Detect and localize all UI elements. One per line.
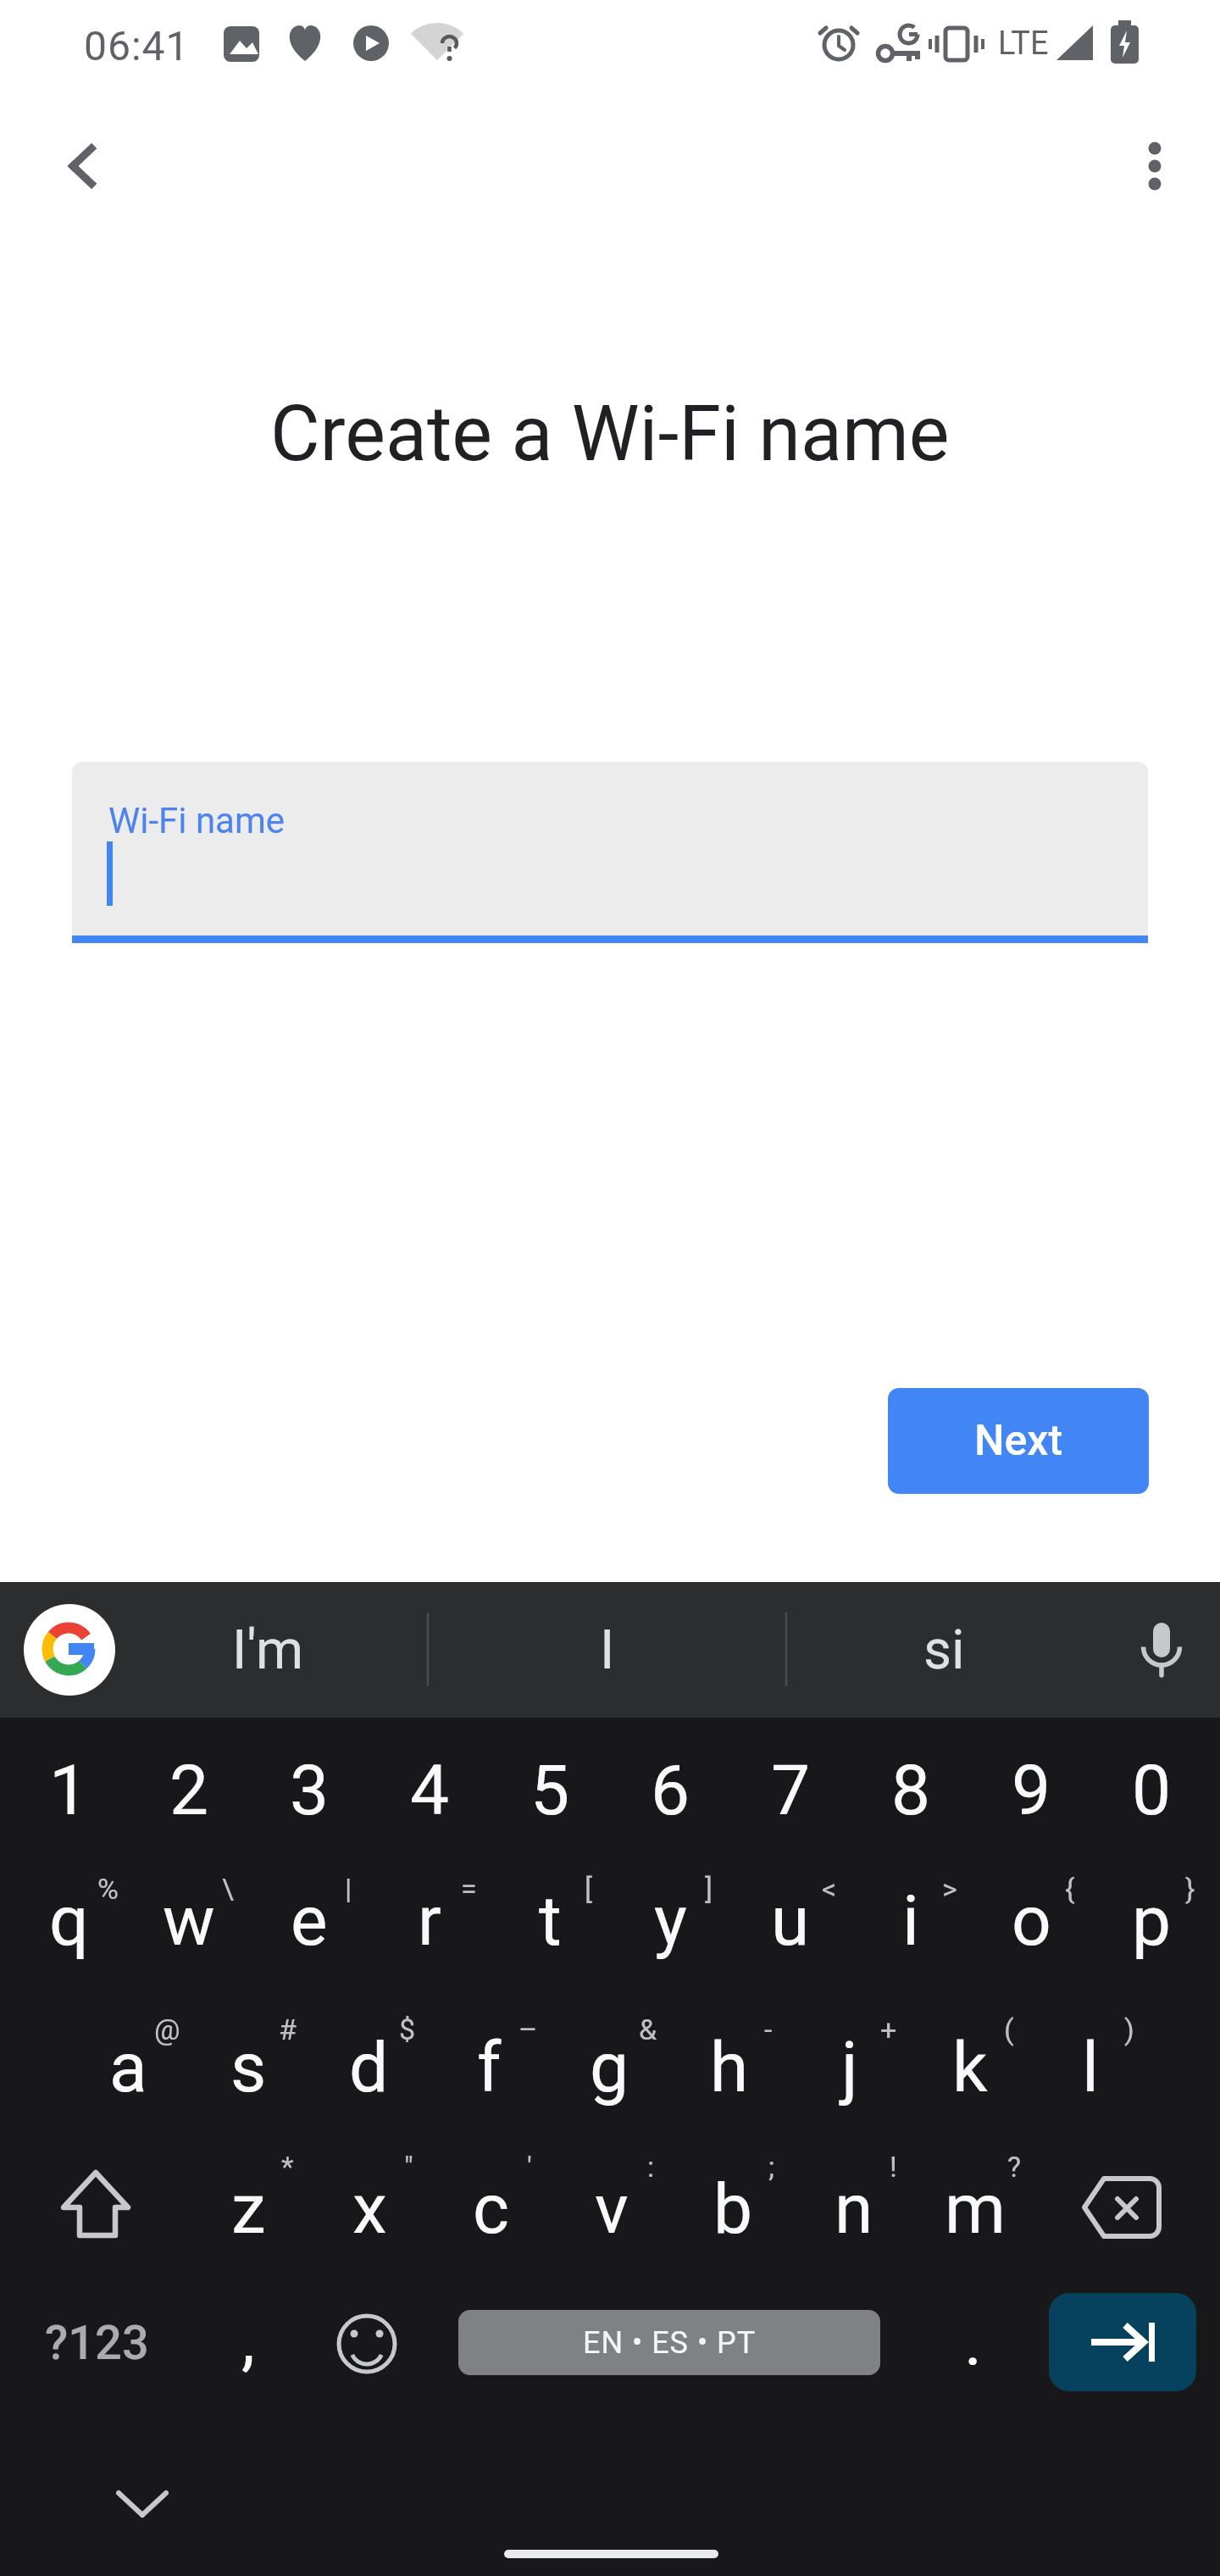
button[interactable]: d [308, 1997, 429, 2138]
button[interactable]: i [851, 1851, 971, 1991]
staticText: % [97, 1872, 119, 1906]
button[interactable]: x [309, 2139, 430, 2279]
button[interactable] [306, 2280, 429, 2421]
button[interactable] [24, 1604, 115, 1696]
button[interactable]: n [794, 2139, 914, 2279]
button[interactable] [1110, 119, 1203, 212]
button[interactable]: v [552, 2139, 672, 2279]
button[interactable]: I'm [128, 1583, 408, 1717]
staticText: i [902, 1880, 919, 1962]
button[interactable]: m [915, 2139, 1035, 2279]
staticText: 4 [410, 1750, 450, 1831]
staticText: 8 [891, 1750, 931, 1831]
button[interactable]: q [8, 1851, 129, 1991]
button[interactable]: l [1030, 1997, 1151, 2138]
staticText: 5 [530, 1750, 570, 1831]
button[interactable] [1049, 2293, 1196, 2391]
staticText: z [231, 2168, 266, 2250]
staticText: | [345, 1872, 352, 1906]
staticText: 2 [169, 1750, 209, 1831]
staticText: si [923, 1618, 965, 1682]
staticText: r [418, 1880, 441, 1962]
staticText: LTE [998, 25, 1049, 63]
button[interactable]: p [1091, 1851, 1212, 1991]
staticText: k [952, 2027, 988, 2108]
staticText: " [404, 2150, 413, 2184]
button[interactable]: 8 [851, 1720, 971, 1861]
staticText: a [109, 2027, 147, 2108]
button[interactable]: z [188, 2139, 308, 2279]
staticText: m [945, 2168, 1006, 2250]
button[interactable]: j [790, 1997, 910, 2138]
staticText: 6 [651, 1750, 690, 1831]
staticText: { [1065, 1872, 1075, 1906]
button[interactable]: 4 [369, 1720, 490, 1861]
button[interactable]: b [673, 2139, 793, 2279]
button[interactable]: 5 [490, 1720, 610, 1861]
staticText: + [880, 2012, 897, 2046]
button[interactable]: 6 [610, 1720, 730, 1861]
button[interactable]: 9 [971, 1720, 1091, 1861]
staticText: @ [154, 2012, 180, 2046]
staticText: Wi-Fi name [108, 800, 286, 841]
button[interactable]: w [129, 1851, 249, 1991]
button[interactable]: h [669, 1997, 790, 2138]
button[interactable] [1106, 1602, 1216, 1699]
staticText: EN • ES • PT [583, 2325, 757, 2361]
button[interactable]: c [430, 2139, 551, 2279]
button[interactable]: 0 [1091, 1720, 1212, 1861]
button[interactable]: a [68, 1997, 188, 2138]
staticText: ; [768, 2150, 775, 2184]
button[interactable]: g [549, 1997, 669, 2138]
button[interactable]: s [188, 1997, 308, 2138]
button[interactable] [51, 119, 144, 212]
staticText: 1 [49, 1750, 89, 1831]
button[interactable]: Next [888, 1388, 1149, 1494]
staticText: \ [222, 1872, 234, 1906]
staticText: # [279, 2012, 297, 2046]
button[interactable]: , [188, 2270, 308, 2411]
button[interactable]: I [446, 1583, 768, 1717]
staticText: h [710, 2027, 749, 2108]
button[interactable]: k [910, 1997, 1030, 2138]
staticText: x [352, 2168, 387, 2250]
staticText: . [964, 2302, 983, 2382]
staticText: > [942, 1872, 957, 1906]
button[interactable]: f [429, 1997, 549, 2138]
button[interactable]: u [730, 1851, 851, 1991]
button[interactable]: r [369, 1851, 490, 1991]
button[interactable] [34, 2140, 157, 2280]
staticText: ' [527, 2150, 532, 2184]
staticText: y [654, 1880, 687, 1962]
button[interactable]: si [804, 1583, 1084, 1717]
staticText: 06:41 [84, 22, 190, 69]
button[interactable]: y [610, 1851, 730, 1991]
staticText: , [241, 2301, 255, 2380]
staticText: n [835, 2168, 873, 2250]
staticText: b [713, 2168, 753, 2250]
staticText: e [291, 1880, 328, 1962]
staticText: 0 [1132, 1750, 1172, 1831]
staticText: q [49, 1880, 89, 1962]
button[interactable] [72, 762, 1148, 935]
button[interactable]: ?123 [25, 2273, 169, 2413]
button[interactable] [1061, 2140, 1184, 2280]
button[interactable]: EN • ES • PT [458, 2310, 880, 2375]
staticText: l [1082, 2027, 1099, 2108]
staticText: ? [1007, 2150, 1022, 2184]
staticText: $ [399, 2012, 416, 2046]
button[interactable]: 2 [129, 1720, 249, 1861]
staticText: 7 [771, 1750, 811, 1831]
button[interactable]: o [971, 1851, 1091, 1991]
button[interactable]: e [249, 1851, 369, 1991]
button[interactable]: t [490, 1851, 610, 1991]
staticText: v [595, 2168, 629, 2250]
staticText: j [841, 2027, 858, 2108]
staticText: – [518, 2012, 538, 2046]
button[interactable]: 3 [249, 1720, 369, 1861]
button[interactable]: 7 [730, 1720, 851, 1861]
staticText: g [590, 2027, 629, 2108]
button[interactable]: 1 [8, 1720, 129, 1861]
staticText: - [764, 2012, 773, 2046]
button[interactable]: . [913, 2272, 1034, 2412]
